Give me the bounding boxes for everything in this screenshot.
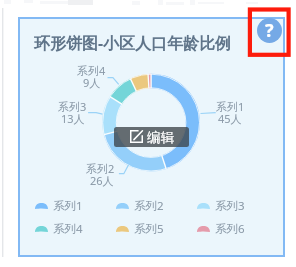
staticText: 系列3 — [215, 198, 245, 213]
staticText: 系列4 — [77, 63, 106, 78]
button[interactable]: 系列6 — [197, 222, 259, 237]
staticText: 系列2 — [134, 198, 164, 213]
staticText: 系列1 — [216, 99, 245, 114]
staticText: 系列1 — [53, 198, 83, 213]
staticText: 编辑 — [147, 129, 174, 146]
staticText: 45人 — [218, 111, 242, 126]
button[interactable]: 系列4 — [35, 222, 97, 237]
button[interactable]: 系列2 — [116, 199, 178, 214]
button[interactable]: 帮助 — [257, 18, 282, 43]
staticText: 系列5 — [134, 221, 164, 236]
staticText: 13人 — [61, 111, 85, 126]
staticText: 26人 — [90, 173, 114, 188]
staticText: 9人 — [83, 75, 101, 90]
staticText: 系列3 — [58, 99, 87, 114]
staticText: 系列4 — [53, 221, 83, 236]
staticText: 系列6 — [215, 221, 245, 236]
staticText: ? — [265, 18, 274, 43]
button[interactable]: 系列3 — [197, 199, 259, 214]
staticText: 环形饼图-小区人口年龄比例 — [34, 32, 232, 54]
button[interactable]: 系列1 — [35, 199, 97, 214]
button[interactable]: 系列5 — [116, 222, 178, 237]
button[interactable]: 编辑 — [114, 127, 189, 147]
staticText: 系列2 — [86, 161, 115, 176]
